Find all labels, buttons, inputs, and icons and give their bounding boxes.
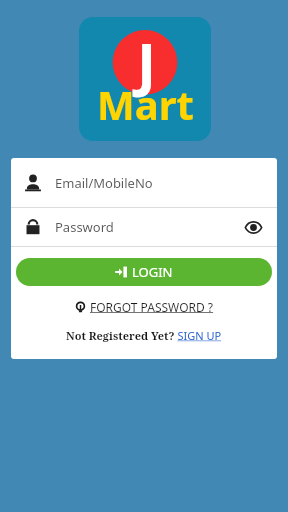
button[interactable]: Not Registered Yet? SIGN UP: [60, 326, 228, 345]
staticText: LOGIN: [132, 263, 173, 281]
button[interactable]: Password: [11, 208, 277, 246]
button[interactable]: Show password: [242, 216, 264, 238]
button[interactable]: LOGIN: [16, 258, 272, 286]
button[interactable]: Email/MobileNo: [11, 158, 277, 207]
staticText: Not Registered Yet? SIGN UP: [66, 328, 222, 343]
button[interactable]: FORGOT PASSWORD ?: [68, 296, 220, 318]
staticText: Password: [55, 218, 242, 236]
staticText: Email/MobileNo: [55, 174, 153, 192]
staticText: J: [137, 23, 157, 102]
staticText: Mart: [97, 77, 194, 131]
staticText: FORGOT PASSWORD ?: [90, 299, 214, 315]
